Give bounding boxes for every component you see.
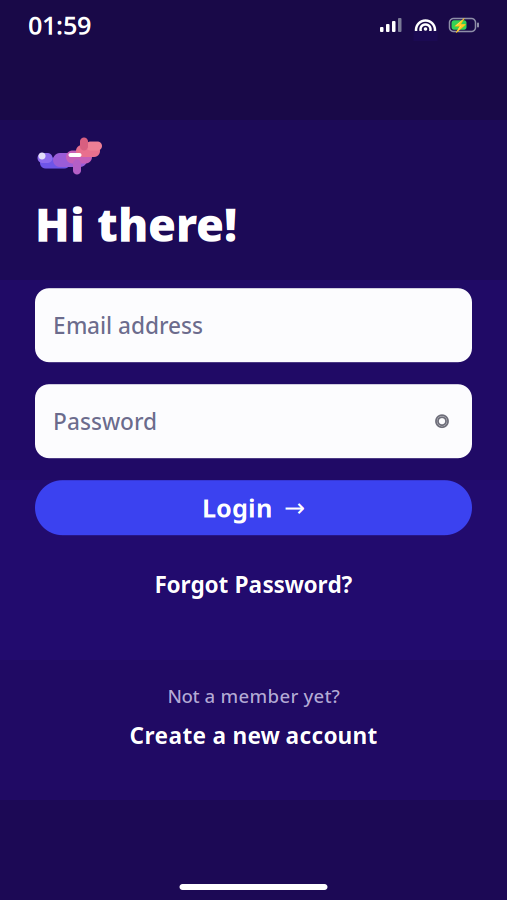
button[interactable]: Email address [35,288,472,362]
staticText: Password [53,406,157,436]
staticText: Forgot Password? [154,569,352,599]
button[interactable]: Password [35,384,472,458]
staticText: → [284,493,305,522]
staticText: Email address [53,310,203,340]
staticText: Hi there! [35,194,237,254]
staticText: Not a member yet? [167,683,339,708]
button[interactable]: Forgot Password? [140,561,366,607]
button[interactable]: Create a new account [119,716,387,754]
staticText: ⚡ [452,17,469,33]
staticText: Login [202,491,272,524]
staticText: Create a new account [129,720,377,750]
button[interactable]: Login [35,480,472,535]
staticText: 01:59 [28,8,91,42]
